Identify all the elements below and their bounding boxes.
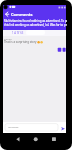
button[interactable] [5, 124, 58, 132]
staticText: samim [4, 37, 12, 40]
staticText: Comments [11, 12, 33, 17]
button[interactable] [59, 125, 66, 132]
button[interactable]: 1 A 'B' 63 [12, 31, 24, 35]
button[interactable] [46, 134, 60, 144]
staticText: That is a surprising story [4, 40, 37, 44]
button[interactable] [10, 134, 24, 144]
button[interactable] [3, 11, 10, 20]
staticText: this link working as advertised, lol. Wa… [4, 23, 67, 27]
staticText: Message [8, 125, 19, 128]
button[interactable] [29, 134, 43, 144]
staticText: Multivitamins found nothing as advertise… [4, 19, 67, 23]
